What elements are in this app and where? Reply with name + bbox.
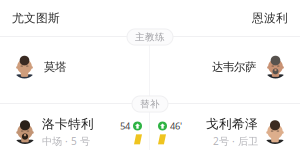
- button[interactable]: 尤文图斯: [12, 11, 60, 25]
- staticText: 中场 · 5 号: [42, 134, 90, 148]
- staticText: 主教练: [135, 31, 165, 43]
- staticText: 莫塔: [44, 60, 66, 74]
- button[interactable]: 莫塔: [13, 54, 137, 80]
- staticText: 46': [170, 120, 182, 132]
- button[interactable]: 46': [158, 118, 287, 146]
- staticText: 恩波利: [252, 11, 288, 25]
- staticText: 2号 · 后卫: [213, 134, 258, 148]
- staticText: 替补: [140, 98, 160, 110]
- staticText: 尤文图斯: [12, 11, 60, 25]
- button[interactable]: 达韦尔萨: [163, 54, 287, 80]
- button[interactable]: 恩波利: [252, 11, 288, 25]
- staticText: 54: [120, 120, 130, 132]
- staticText: 戈利希泽: [206, 116, 258, 132]
- staticText: 洛卡特利: [42, 116, 94, 132]
- staticText: 达韦尔萨: [212, 60, 256, 74]
- button[interactable]: 洛卡特利: [13, 118, 142, 146]
